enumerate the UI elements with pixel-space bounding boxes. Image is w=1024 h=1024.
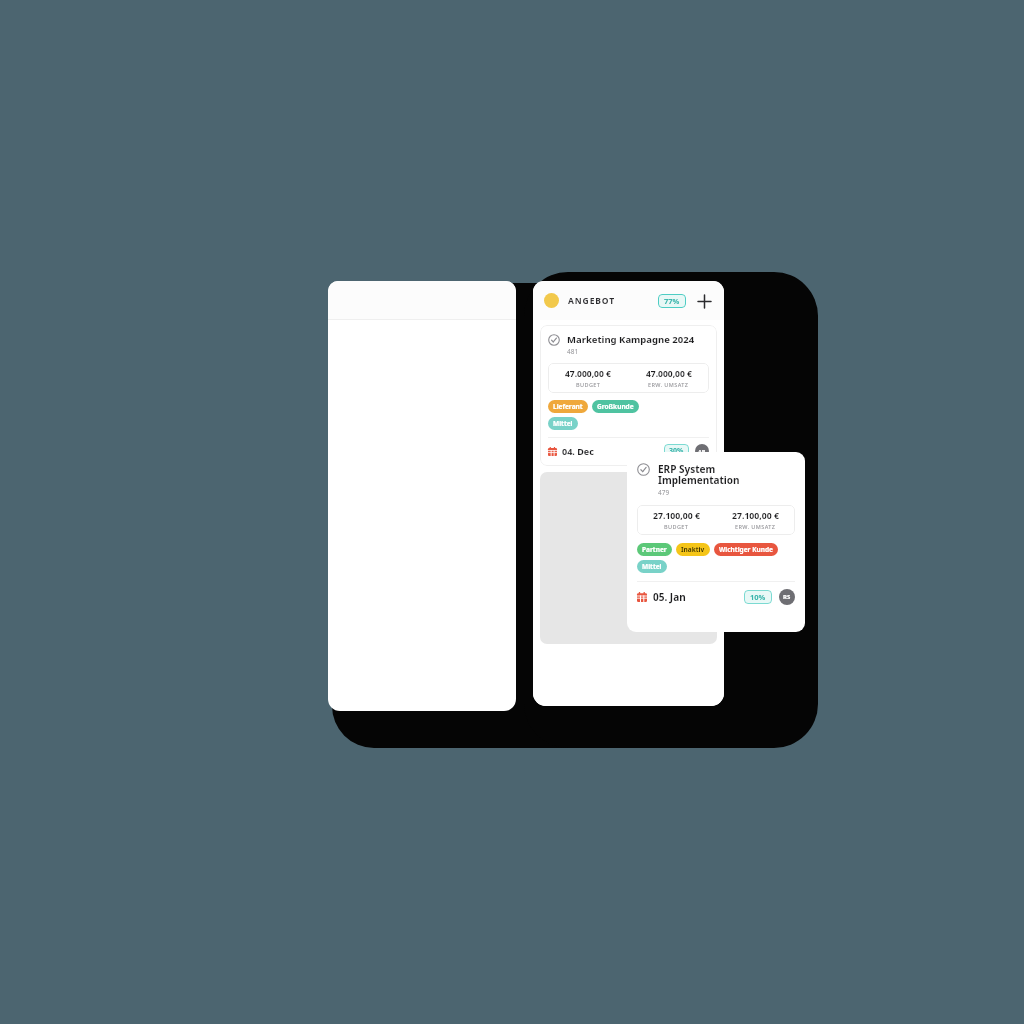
staticText: RS [783,593,791,601]
staticText: BUDGET [664,523,689,530]
staticText: ERW. UMSATZ [648,381,689,388]
button[interactable]: 10% [744,590,772,604]
staticText: BUDGET [576,381,601,388]
staticText: Mittel [553,419,573,428]
button[interactable]: 30% [664,444,689,458]
staticText: 04. Dec [562,445,594,457]
staticText: AB [698,448,706,455]
staticText: 47.000,00 € [646,368,692,380]
staticText: Inaktiv [681,545,705,554]
button[interactable]: Mittel [548,417,578,430]
button[interactable]: 47.000,00 € [548,363,709,393]
staticText: Großkunde [597,402,634,411]
button[interactable]: Inaktiv [676,543,710,556]
button[interactable]: AB [695,444,709,458]
button[interactable] [540,472,717,644]
button[interactable]: 77% [658,294,686,308]
button[interactable]: ERP System Implementation [627,452,805,632]
button[interactable]: Großkunde [592,400,639,413]
staticText: 481 [567,347,579,356]
staticText: Lieferant [553,402,583,411]
staticText: 77% [664,296,680,306]
staticText: ANGEBOT [568,295,616,307]
button[interactable]: Marketing Kampagne 2024 [540,325,717,466]
button[interactable]: Partner [637,543,672,556]
staticText: ERP System Implementation [658,462,795,487]
button[interactable]: Status [544,293,559,308]
button[interactable]: Wichtiger Kunde [714,543,778,556]
staticText: 27.100,00 € [732,510,779,522]
staticText: 27.100,00 € [653,510,700,522]
staticText: ERW. UMSATZ [735,523,776,530]
staticText: 479 [658,488,670,497]
button[interactable]: 27.100,00 € [637,505,795,535]
button[interactable]: Mittel [637,560,667,573]
staticText: 47.000,00 € [565,368,611,380]
staticText: Partner [642,545,667,554]
staticText: Mittel [642,562,662,571]
button[interactable]: Lieferant [548,400,588,413]
staticText: Marketing Kampagne 2024 [567,333,695,346]
button[interactable]: RS [779,589,795,605]
button[interactable]: Hinzufügen [695,292,713,310]
staticText: 10% [750,592,766,602]
staticText: 05. Jan [653,590,686,604]
staticText: Wichtiger Kunde [719,545,773,554]
staticText: 30% [669,446,684,456]
